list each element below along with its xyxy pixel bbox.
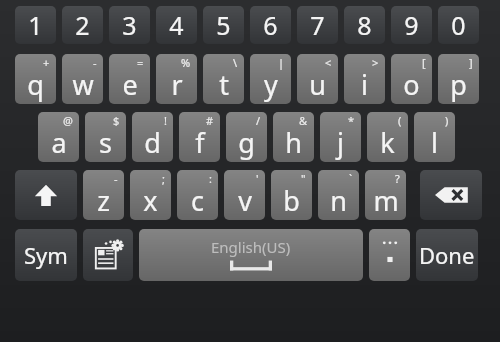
staticText: j [337, 124, 344, 161]
staticText: k [380, 124, 395, 161]
staticText: > [372, 55, 379, 70]
staticText: r [171, 66, 183, 103]
staticText: v [238, 182, 252, 219]
staticText: | [278, 55, 285, 70]
staticText: e [122, 66, 138, 103]
staticText: y [264, 66, 278, 103]
button[interactable]: : [177, 170, 218, 220]
staticText: 5 [216, 8, 231, 42]
staticText: i [361, 66, 368, 103]
staticText: t [219, 66, 229, 103]
button[interactable]: Period [369, 229, 410, 281]
button[interactable]: 5 [203, 6, 244, 44]
staticText: $ [113, 113, 120, 128]
staticText: * [348, 113, 355, 128]
staticText: 0 [451, 8, 466, 42]
staticText: 1 [28, 8, 43, 42]
staticText: a [51, 124, 67, 161]
button[interactable]: > [344, 54, 385, 104]
button[interactable]: # [179, 112, 220, 162]
button[interactable]: Space [139, 229, 363, 281]
button[interactable]: ? [365, 170, 406, 220]
button[interactable]: & [273, 112, 314, 162]
staticText: ? [395, 171, 400, 186]
staticText: 8 [357, 8, 372, 42]
button[interactable]: ] [438, 54, 479, 104]
staticText: h [285, 124, 302, 161]
button[interactable]: 0 [438, 6, 479, 44]
button[interactable]: Done [416, 229, 478, 281]
staticText: " [301, 171, 306, 186]
staticText: g [238, 124, 255, 161]
staticText: b [283, 182, 300, 219]
staticText: Sym [24, 240, 68, 270]
staticText: - [93, 55, 97, 70]
staticText: ; [162, 171, 165, 186]
staticText: ! [164, 113, 167, 128]
staticText: s [99, 124, 112, 161]
staticText: % [181, 55, 191, 70]
button[interactable]: ! [132, 112, 173, 162]
staticText: \ [233, 55, 238, 70]
button[interactable]: " [271, 170, 312, 220]
button[interactable]: 4 [156, 6, 197, 44]
button[interactable]: Backspace [420, 170, 482, 220]
staticText: u [309, 66, 326, 103]
button[interactable]: | [250, 54, 291, 104]
staticText: 4 [169, 8, 184, 42]
button[interactable]: ; [130, 170, 171, 220]
button[interactable]: % [156, 54, 197, 104]
button[interactable]: 2 [62, 6, 103, 44]
staticText: ) [445, 113, 449, 128]
staticText: Done [419, 240, 475, 270]
staticText: @ [63, 113, 73, 128]
button[interactable]: [ [391, 54, 432, 104]
button[interactable]: Change keyboard [83, 229, 133, 281]
button[interactable]: @ [38, 112, 79, 162]
staticText: English(US) [211, 237, 291, 257]
button[interactable]: 3 [109, 6, 150, 44]
staticText: 3 [122, 8, 137, 42]
button[interactable]: - [62, 54, 103, 104]
staticText: d [144, 124, 161, 161]
staticText: o [403, 66, 420, 103]
staticText: q [27, 66, 44, 103]
staticText: c [191, 182, 204, 219]
staticText: [ [422, 55, 426, 70]
staticText: : [209, 171, 212, 186]
staticText: l [431, 124, 438, 161]
staticText: 6 [263, 8, 278, 42]
staticText: ' [256, 171, 259, 186]
button[interactable]: Sym [15, 229, 77, 281]
staticText: ` [349, 171, 353, 186]
staticText: # [206, 113, 214, 128]
button[interactable]: ) [414, 112, 455, 162]
button[interactable]: < [297, 54, 338, 104]
button[interactable]: Shift [15, 170, 77, 220]
button[interactable]: ` [318, 170, 359, 220]
button[interactable]: = [109, 54, 150, 104]
button[interactable]: + [15, 54, 56, 104]
staticText: ] [469, 55, 473, 70]
button[interactable]: ' [224, 170, 265, 220]
button[interactable]: / [226, 112, 267, 162]
button[interactable]: 9 [391, 6, 432, 44]
button[interactable]: ( [367, 112, 408, 162]
button[interactable]: 1 [15, 6, 56, 44]
staticText: 7 [310, 8, 325, 42]
button[interactable]: * [320, 112, 361, 162]
staticText: x [143, 182, 158, 219]
staticText: f [195, 124, 205, 161]
staticText: 2 [75, 8, 90, 42]
staticText: z [97, 182, 110, 219]
button[interactable]: 7 [297, 6, 338, 44]
staticText: m [373, 182, 399, 219]
staticText: p [450, 66, 467, 103]
button[interactable]: 8 [344, 6, 385, 44]
button[interactable]: \ [203, 54, 244, 104]
staticText: - [114, 171, 118, 186]
button[interactable]: - [83, 170, 124, 220]
button[interactable]: 6 [250, 6, 291, 44]
button[interactable]: $ [85, 112, 126, 162]
staticText: 9 [404, 8, 419, 42]
